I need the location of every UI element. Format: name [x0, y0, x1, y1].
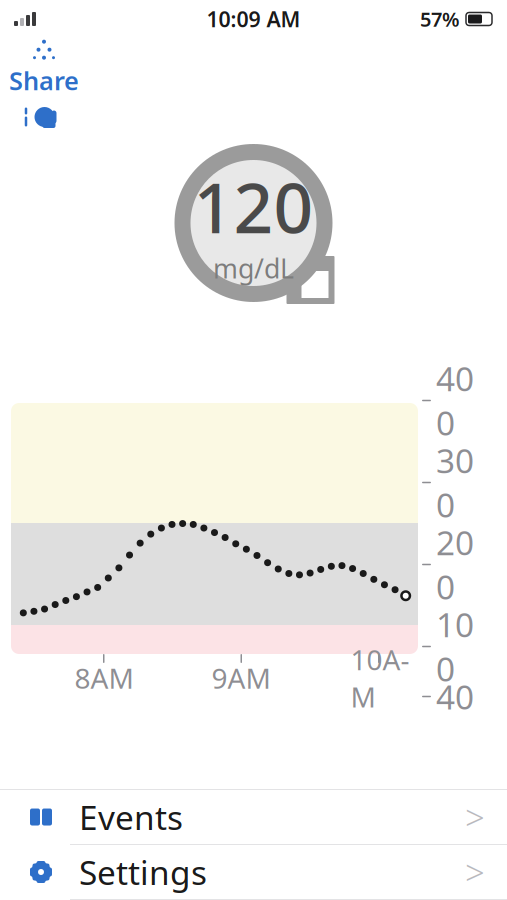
staticText: 100 — [436, 602, 474, 691]
staticText: 9AM — [211, 659, 270, 697]
staticText: Settings — [79, 850, 207, 894]
staticText: 10:09 AM — [206, 5, 300, 33]
staticText: 10AM — [350, 641, 409, 715]
staticText: 40 — [436, 674, 474, 719]
staticText: 200 — [436, 520, 474, 609]
button[interactable]: Share — [8, 40, 80, 94]
staticText: > — [465, 849, 485, 895]
staticText: Share — [9, 64, 79, 97]
button[interactable]: Settings — [0, 845, 507, 900]
staticText: 400 — [436, 356, 474, 445]
button[interactable]: Alerts — [14, 98, 66, 136]
staticText: mg/dL — [213, 250, 294, 286]
staticText: 300 — [436, 438, 474, 527]
staticText: 120 — [193, 160, 313, 252]
staticText: Events — [79, 795, 183, 839]
button[interactable]: Events — [0, 790, 507, 845]
staticText: 57% — [420, 6, 460, 32]
staticText: > — [465, 794, 485, 840]
staticText: 8AM — [74, 659, 133, 697]
